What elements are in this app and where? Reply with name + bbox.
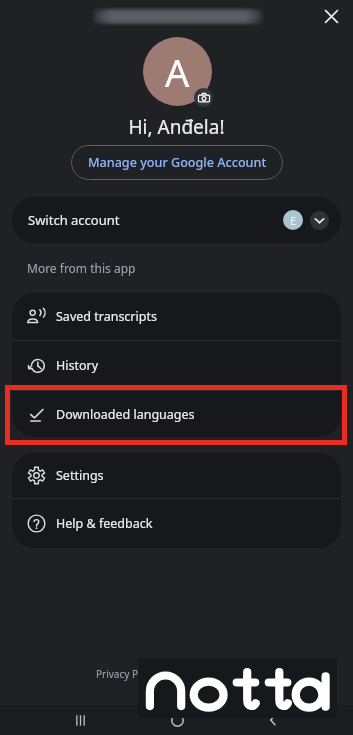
staticText: Help & feedback <box>56 515 153 532</box>
button[interactable]: Settings <box>12 453 341 498</box>
button[interactable]: Downloaded languages <box>12 391 341 437</box>
button[interactable]: Terms of Service <box>181 667 258 681</box>
staticText: More from this app <box>27 260 136 276</box>
staticText: E <box>290 213 297 228</box>
button[interactable]: Privacy Policy <box>96 667 160 681</box>
staticText: Manage your Google Account <box>88 154 267 171</box>
button[interactable]: Back <box>256 705 290 735</box>
button[interactable]: Home <box>160 705 194 735</box>
button[interactable]: Change profile photo <box>194 88 213 107</box>
button[interactable]: Switch account <box>12 197 341 243</box>
staticText: Downloaded languages <box>56 406 195 423</box>
button[interactable]: Close <box>317 2 346 31</box>
staticText: A <box>165 46 190 98</box>
staticText: Saved transcripts <box>56 308 157 325</box>
button[interactable]: Recents <box>63 705 97 735</box>
staticText: History <box>56 357 99 374</box>
button[interactable]: Manage your Google Account <box>71 145 283 180</box>
button[interactable]: Saved transcripts <box>12 293 341 340</box>
staticText: Settings <box>56 467 104 484</box>
staticText: Hi, Anđela! <box>128 114 225 140</box>
button[interactable]: Help & feedback <box>12 499 341 548</box>
staticText: Switch account <box>28 211 120 229</box>
button[interactable]: History <box>12 341 341 390</box>
button[interactable]: Profile photo <box>143 37 212 106</box>
